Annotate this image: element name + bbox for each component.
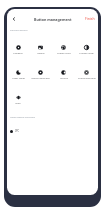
button[interactable]: Motion Detection	[29, 67, 52, 90]
button[interactable]: Playback	[7, 42, 29, 65]
staticText: Sound Detection	[78, 77, 96, 80]
button[interactable]: Finish	[85, 16, 98, 21]
button[interactable]: Private Mode	[75, 42, 98, 65]
button[interactable]: IPC	[7, 127, 98, 135]
button[interactable]: Siren	[7, 92, 29, 115]
staticText: Mirrors	[60, 77, 68, 80]
staticText: Siren	[15, 102, 21, 105]
staticText: Button management	[34, 17, 72, 22]
staticText: Theme Color	[57, 52, 71, 55]
button[interactable]: Sound Detection	[75, 67, 98, 90]
staticText: Night Mode	[12, 77, 25, 80]
staticText: Gallery	[37, 52, 45, 55]
staticText: Motion Detection	[31, 77, 50, 80]
button[interactable]: Back	[9, 14, 18, 23]
button[interactable]: Gallery	[29, 42, 52, 65]
staticText: Playback	[13, 52, 23, 55]
staticText: Home Device Shortcuts	[10, 116, 36, 119]
staticText: Function Button	[10, 29, 28, 32]
staticText: Finish	[85, 16, 95, 21]
button[interactable]: Night Mode	[7, 67, 29, 90]
button[interactable]: Mirrors	[52, 67, 75, 90]
staticText: Private Mode	[79, 52, 94, 55]
button[interactable]: Theme Color	[52, 42, 75, 65]
staticText: IPC	[15, 129, 20, 133]
